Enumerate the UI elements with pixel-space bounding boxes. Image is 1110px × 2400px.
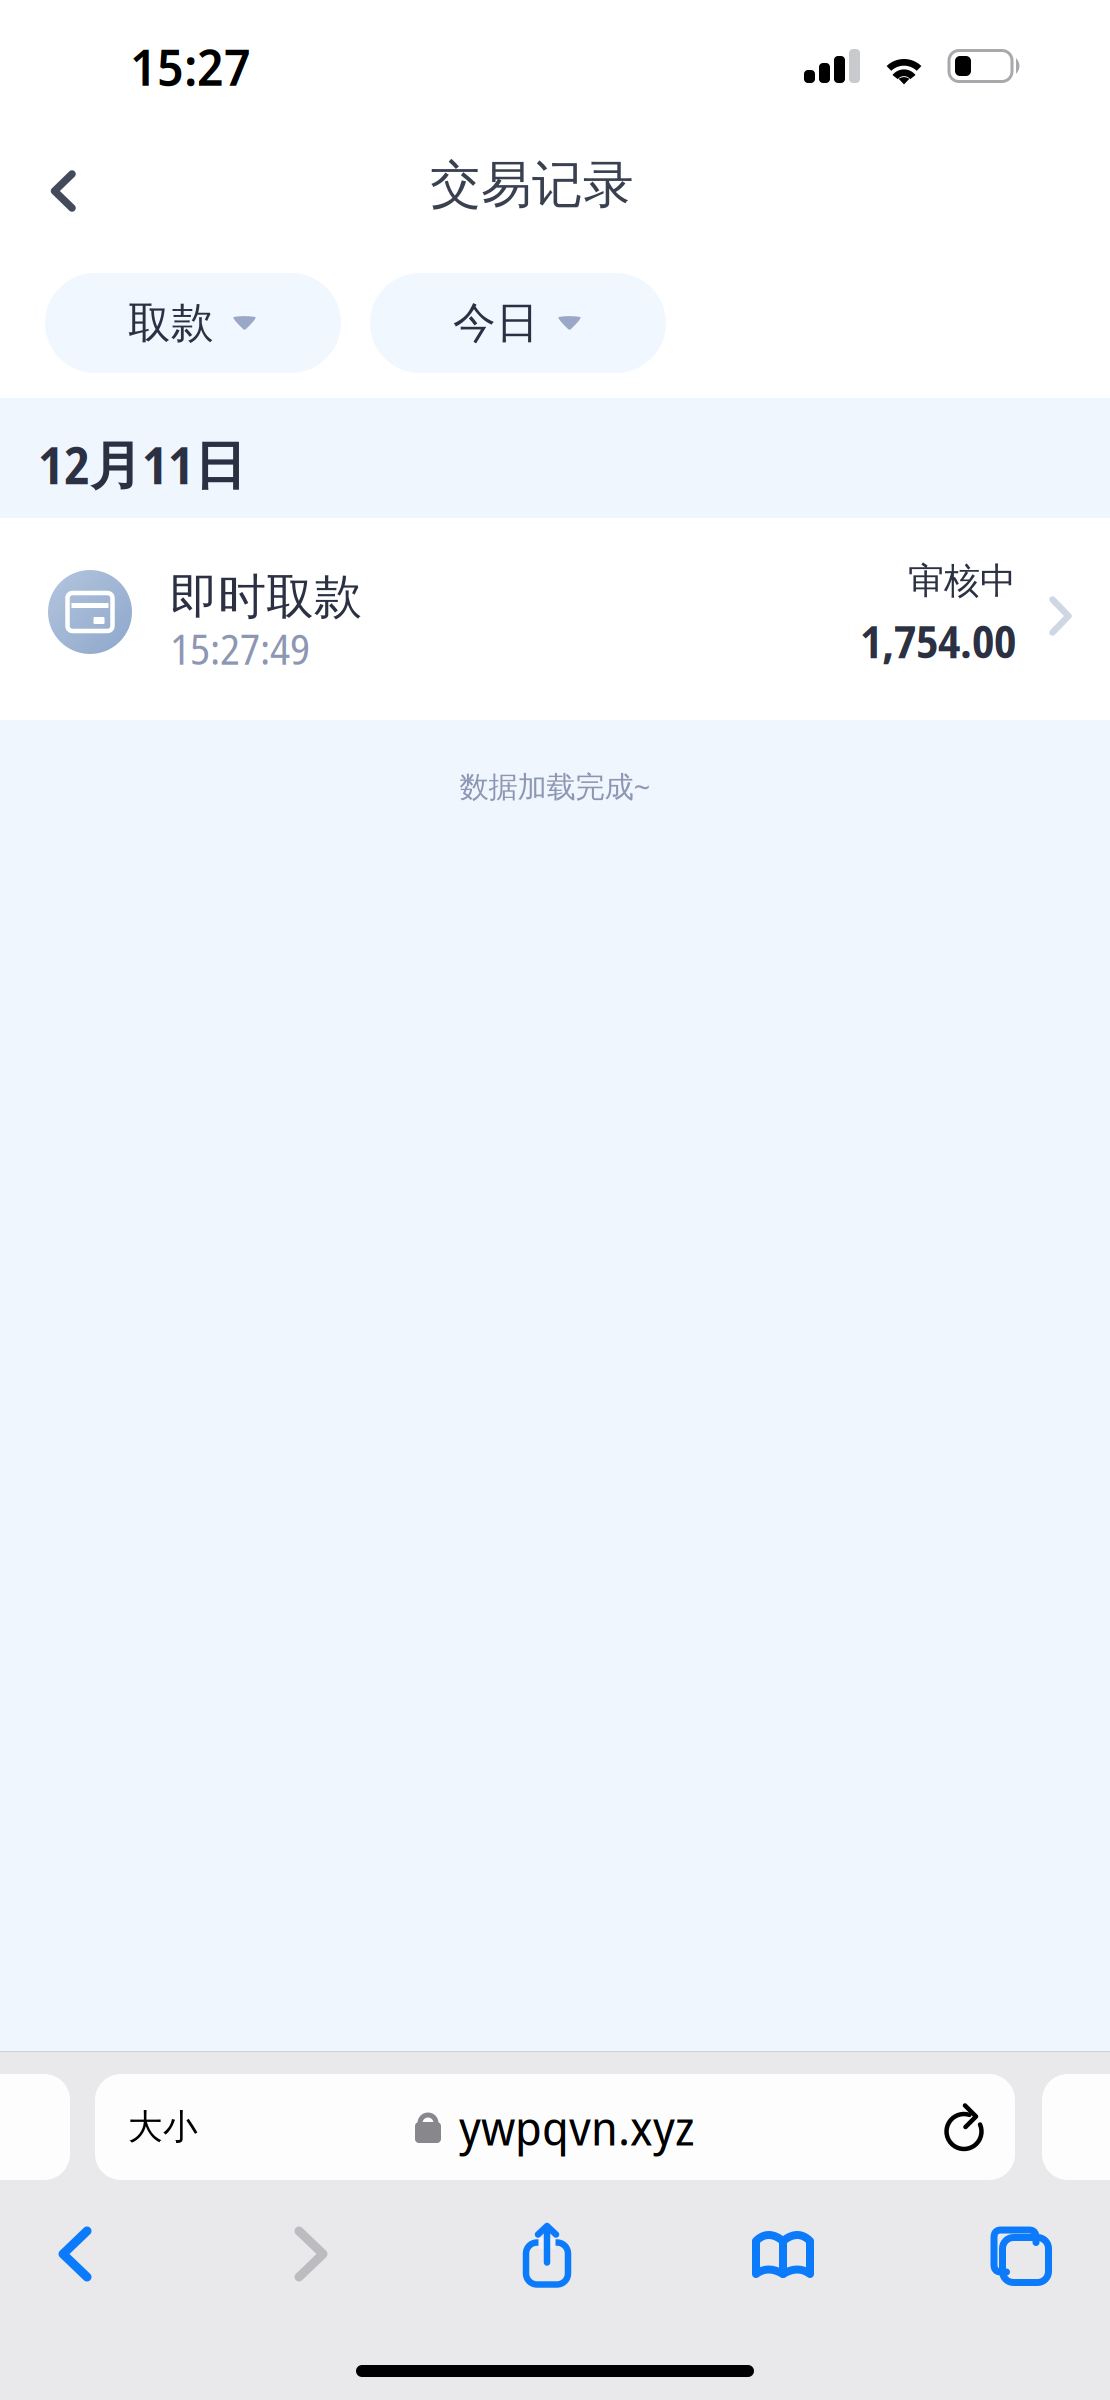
staticText: 15:27 bbox=[130, 31, 251, 100]
staticText: 取款 bbox=[128, 296, 214, 350]
button[interactable]: Share bbox=[472, 2208, 622, 2300]
staticText: 12月11日 bbox=[38, 429, 246, 499]
button[interactable]: Bookmarks bbox=[708, 2208, 858, 2300]
staticText: 1,754.00 bbox=[860, 610, 1016, 671]
staticText: 审核中 bbox=[908, 558, 1016, 604]
button[interactable]: 今日 bbox=[370, 273, 666, 373]
staticText: 大小 bbox=[128, 2105, 198, 2149]
staticText: 即时取款 bbox=[170, 567, 362, 627]
button[interactable]: Back bbox=[0, 2208, 150, 2300]
staticText: 15:27:49 bbox=[170, 619, 310, 677]
button[interactable]: Forward bbox=[236, 2208, 386, 2300]
staticText: 今日 bbox=[453, 296, 539, 350]
button[interactable]: Tabs bbox=[944, 2208, 1094, 2300]
staticText: 交易记录 bbox=[430, 153, 634, 217]
button[interactable]: 大小 bbox=[0, 2074, 920, 2180]
button[interactable]: Back bbox=[0, 131, 116, 229]
staticText: 数据加载完成~ bbox=[459, 766, 650, 806]
button[interactable]: 取款 bbox=[45, 273, 341, 373]
staticText: ywpqvn.xyz bbox=[459, 2094, 695, 2160]
button[interactable]: 即时取款 bbox=[0, 518, 1110, 720]
